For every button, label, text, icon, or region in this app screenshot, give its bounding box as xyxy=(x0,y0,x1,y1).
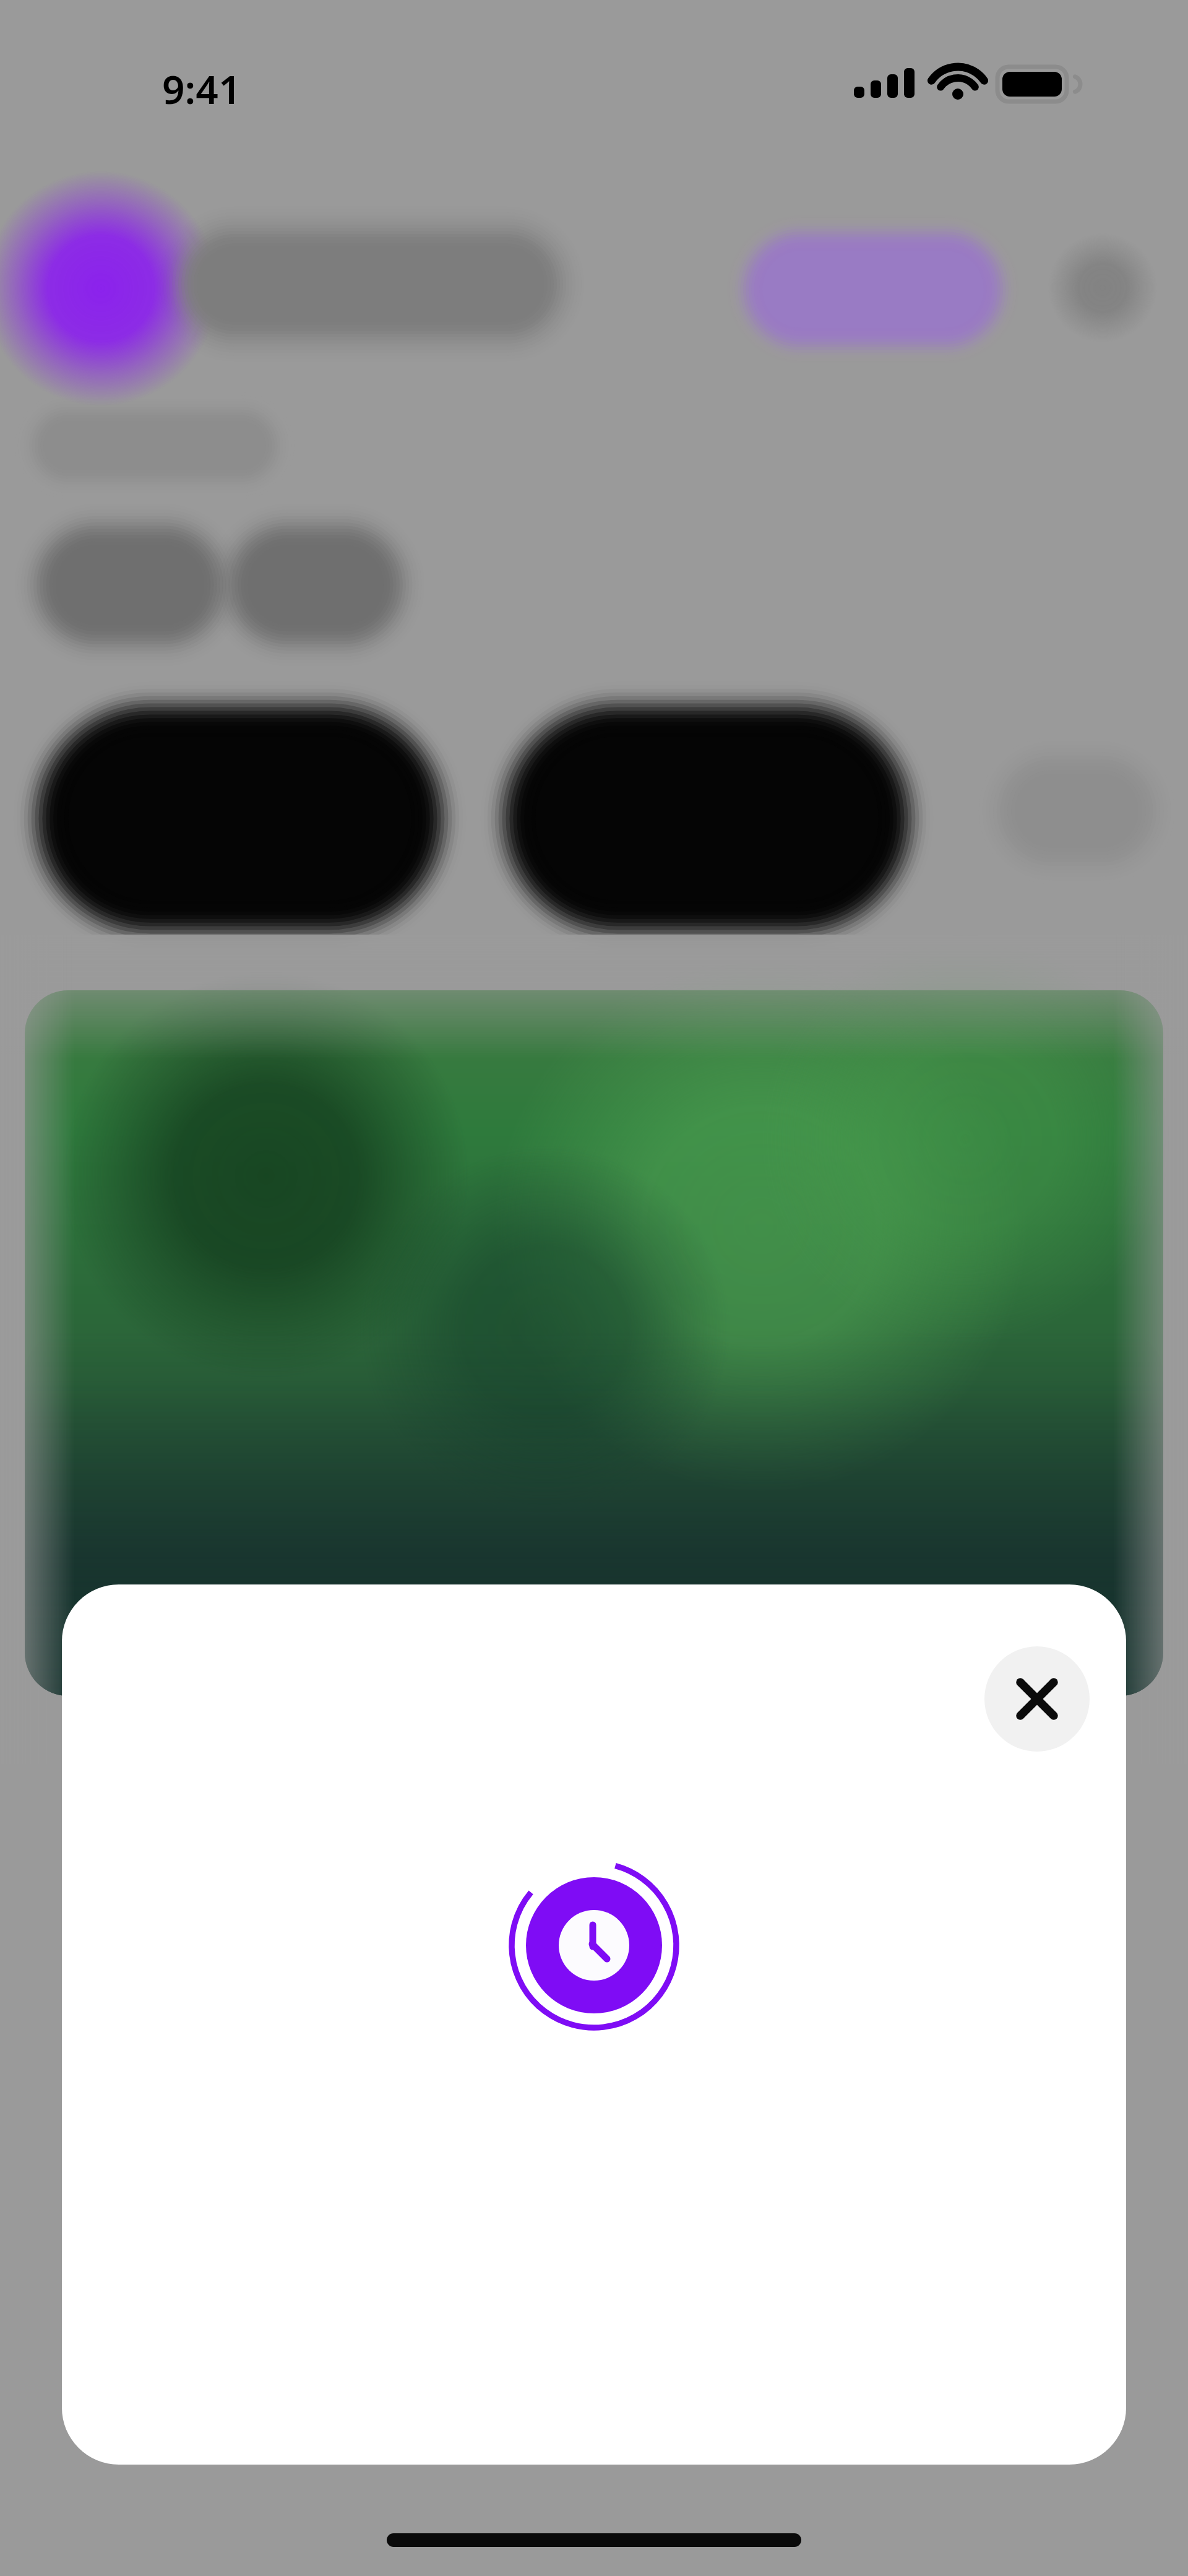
other: Loading xyxy=(507,1859,681,2032)
staticText: 9:41 xyxy=(162,62,241,116)
button[interactable]: Close xyxy=(984,1646,1090,1752)
